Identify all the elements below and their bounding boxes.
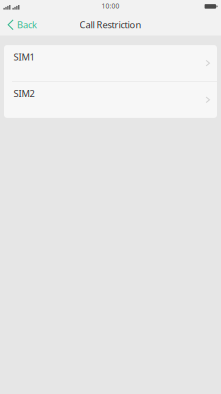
navigationBar: Call Restriction xyxy=(0,14,221,35)
button[interactable]: Back xyxy=(0,14,45,35)
staticText: SIM2 xyxy=(13,87,34,100)
staticText: Call Restriction xyxy=(79,19,141,31)
staticText: 10:00 xyxy=(101,2,119,10)
button[interactable]: SIM1 xyxy=(4,45,217,81)
staticText: SIM1 xyxy=(13,51,34,63)
button[interactable]: SIM2 xyxy=(4,82,217,118)
staticText: Back xyxy=(17,19,37,31)
